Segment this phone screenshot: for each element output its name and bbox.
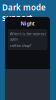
staticText: Where is the nearest open bbox=[9, 31, 45, 42]
staticText: Dark mode support bbox=[2, 2, 46, 23]
staticText: Night bbox=[20, 20, 34, 27]
staticText: coffee shop? bbox=[9, 43, 31, 48]
